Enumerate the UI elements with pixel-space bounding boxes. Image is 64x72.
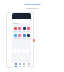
button[interactable]: Shortcut 3 [22, 27, 26, 32]
staticText: Phone Screen & [24, 3, 41, 6]
button[interactable]: Shortcut 7 [22, 34, 26, 39]
button[interactable]: Shortcut 1 [13, 27, 17, 32]
button[interactable]: Shortcut 5 [13, 34, 17, 39]
staticText: Bookmark List [26, 7, 39, 9]
button[interactable]: Tab 1 [14, 63, 17, 67]
button[interactable]: Shortcut 4 [26, 27, 30, 32]
button[interactable]: Tab 4 [27, 63, 30, 67]
button[interactable]: Tab 2 [18, 63, 21, 67]
button[interactable]: Shortcut 8 [26, 34, 30, 39]
button[interactable]: Tab 3 [22, 63, 25, 67]
button[interactable]: Shortcut 2 [17, 27, 21, 32]
button[interactable] [12, 13, 31, 19]
button[interactable]: Shortcut 6 [17, 34, 21, 39]
